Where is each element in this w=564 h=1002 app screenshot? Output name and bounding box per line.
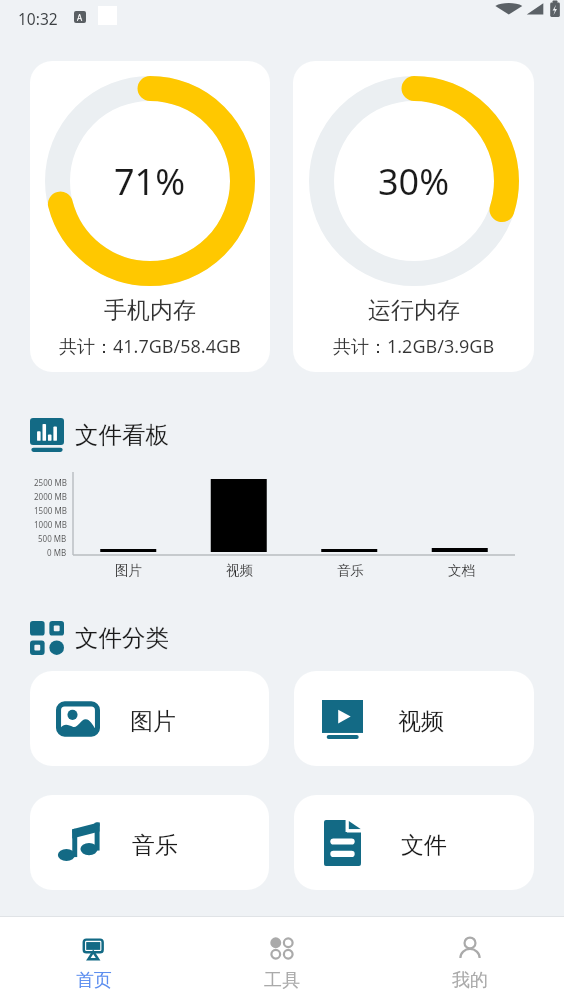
button[interactable]: 71% — [30, 61, 270, 372]
staticText: 共计：1.2GB/3.9GB — [333, 334, 495, 359]
button[interactable]: 我的 — [376, 917, 564, 1002]
staticText: 文件 — [401, 831, 447, 860]
staticText: 10:32 — [18, 8, 58, 29]
staticText: 1500 MB — [34, 505, 67, 516]
button[interactable]: 音乐 — [30, 795, 269, 890]
staticText: 500 MB — [38, 533, 67, 544]
button[interactable]: 文件 — [294, 795, 534, 890]
staticText: 2000 MB — [34, 491, 67, 502]
button[interactable]: 视频 — [294, 671, 534, 766]
staticText: 图片 — [115, 562, 142, 579]
staticText: 文件看板 — [75, 420, 169, 450]
staticText: 我的 — [452, 969, 488, 992]
staticText: 音乐 — [132, 831, 178, 860]
staticText: 71% — [114, 157, 186, 206]
staticText: 视频 — [398, 707, 444, 736]
staticText: 2500 MB — [34, 477, 67, 488]
staticText: 工具 — [264, 969, 300, 992]
staticText: 30% — [378, 157, 450, 206]
staticText: 视频 — [226, 562, 253, 579]
staticText: 0 MB — [47, 547, 67, 558]
staticText: 1000 MB — [34, 519, 67, 530]
staticText: A — [77, 12, 83, 23]
staticText: 图片 — [130, 707, 176, 736]
button[interactable]: 工具 — [188, 917, 376, 1002]
staticText: 音乐 — [337, 562, 364, 579]
button[interactable]: 30% — [293, 61, 534, 372]
staticText: 手机内存 — [104, 296, 196, 325]
button[interactable]: 首页 — [0, 917, 188, 1002]
staticText: 共计：41.7GB/58.4GB — [59, 334, 241, 359]
staticText: 首页 — [76, 969, 112, 992]
staticText: 文件分类 — [75, 623, 169, 653]
button[interactable]: 图片 — [30, 671, 269, 766]
staticText: 文档 — [448, 562, 475, 579]
staticText: 运行内存 — [368, 296, 460, 325]
